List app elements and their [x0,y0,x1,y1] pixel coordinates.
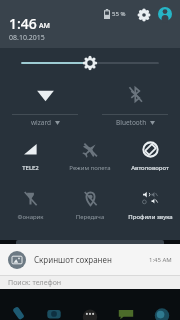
button[interactable]: Скриншот сохранен [0,244,180,275]
staticText: Поиск: телефон [8,278,62,288]
button[interactable]: Режим полета [60,132,120,181]
button[interactable]: Автоповорот [120,132,180,181]
staticText: Режим полета [69,164,111,172]
button[interactable]: Передача геоданных [60,181,120,230]
button[interactable]: Switch user [156,5,174,23]
button[interactable]: Поиск: телефон [0,276,180,289]
staticText: Передача геоданных [62,213,118,221]
button[interactable]: wizard [0,78,90,132]
button[interactable]: Phone [3,303,33,320]
staticText: 1:45 AM [149,256,172,264]
button[interactable]: Settings [135,6,152,23]
staticText: 55 % [112,10,126,18]
button[interactable]: Messages [111,303,141,320]
staticText: wizard [31,118,52,127]
staticText: Фонарик [17,213,44,221]
button[interactable]: Brightness [0,48,180,78]
button[interactable]: Camera [39,303,69,320]
staticText: 08.10.2015 [9,33,45,43]
staticText: Профили звука [128,213,173,221]
button[interactable]: Browser [147,303,177,320]
button[interactable]: Bluetooth [90,78,180,132]
button[interactable]: Apps [75,303,105,320]
staticText: 1:46 [9,14,37,33]
staticText: Скриншот сохранен [34,254,112,265]
staticText: Bluetooth [116,118,147,127]
staticText: TELE2 [22,164,39,172]
button[interactable]: Профили звука [120,181,180,230]
staticText: AM [39,21,51,31]
button[interactable]: TELE2 [0,132,60,181]
button[interactable]: Фонарик [0,181,60,230]
staticText: Автоповорот [131,164,169,172]
